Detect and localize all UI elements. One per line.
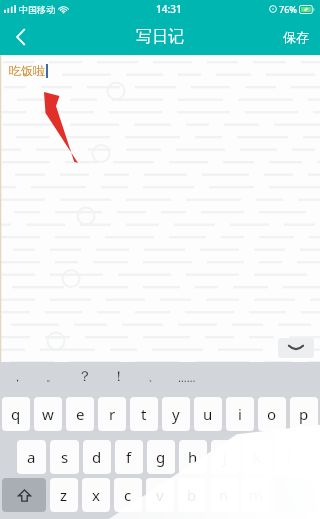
button[interactable]: t	[130, 397, 158, 431]
button[interactable]: ，	[0, 362, 34, 392]
staticText: g	[156, 447, 166, 467]
button[interactable]: s	[50, 440, 79, 474]
button[interactable]: c	[114, 478, 142, 512]
staticText: 、	[148, 370, 159, 384]
button[interactable]: w	[34, 397, 62, 431]
button[interactable]: ！	[102, 362, 136, 392]
button[interactable]: f	[115, 440, 143, 474]
button[interactable]: z	[50, 478, 78, 512]
staticText: ？	[78, 368, 92, 386]
staticText: s	[61, 447, 69, 467]
staticText: p	[299, 404, 309, 424]
button[interactable]: 、	[136, 362, 170, 392]
staticText: e	[76, 404, 85, 424]
button[interactable]: ？	[68, 362, 102, 392]
staticText: y	[172, 404, 180, 424]
staticText: x	[92, 485, 100, 505]
button[interactable]: x	[82, 478, 110, 512]
staticText: ，	[12, 370, 23, 384]
staticText: r	[109, 404, 116, 424]
button[interactable]: e	[66, 397, 94, 431]
staticText: w	[42, 404, 54, 424]
staticText: u	[203, 404, 213, 424]
staticText: 14:31	[156, 2, 182, 16]
button[interactable]: u	[194, 397, 222, 431]
staticText: v	[156, 485, 164, 505]
staticText: b	[187, 485, 197, 505]
staticText: 。	[46, 370, 57, 384]
staticText: a	[27, 447, 36, 467]
button[interactable]: d	[83, 440, 111, 474]
button[interactable]: r	[98, 397, 126, 431]
button[interactable]: q	[2, 397, 30, 431]
staticText: t	[141, 404, 147, 424]
staticText: 保存	[283, 29, 309, 45]
button[interactable]: p	[290, 397, 318, 431]
button[interactable]: 。	[34, 362, 68, 392]
staticText: o	[267, 404, 277, 424]
button[interactable]: Back	[0, 18, 42, 55]
button[interactable]: Shift	[2, 478, 46, 512]
staticText: z	[60, 485, 68, 505]
button[interactable]: 保存	[272, 18, 320, 55]
staticText: 中国移动	[19, 4, 55, 15]
staticText: h	[188, 447, 198, 467]
button[interactable]: o	[258, 397, 286, 431]
button[interactable]: ……	[170, 362, 204, 392]
staticText: ……	[178, 370, 196, 385]
staticText: q	[11, 404, 21, 424]
staticText: i	[238, 404, 242, 424]
button[interactable]: v	[146, 478, 174, 512]
staticText: 76%	[279, 3, 297, 15]
button[interactable]: g	[147, 440, 175, 474]
staticText: 写日记	[136, 27, 184, 47]
button[interactable]: y	[162, 397, 190, 431]
staticText: n	[219, 485, 229, 505]
button[interactable]: Hide keyboard	[278, 338, 314, 358]
staticText: 吃饭啦	[9, 63, 45, 78]
staticText: ！	[112, 368, 126, 386]
staticText: d	[92, 447, 102, 467]
button[interactable]: h	[179, 440, 207, 474]
button[interactable]: i	[226, 397, 254, 431]
staticText: f	[126, 447, 132, 467]
staticText: c	[124, 485, 132, 505]
button[interactable]: a	[17, 440, 46, 474]
